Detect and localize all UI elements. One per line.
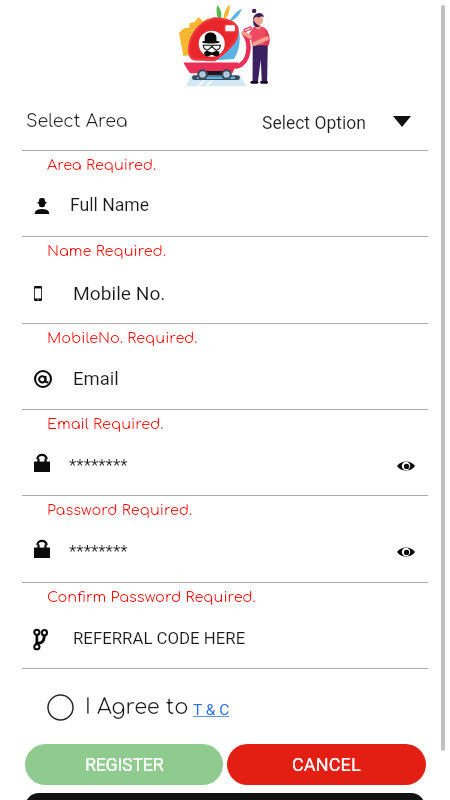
staticText: Email bbox=[73, 368, 119, 390]
staticText: REGISTER bbox=[85, 754, 164, 775]
button[interactable]: T & C bbox=[193, 701, 230, 719]
staticText: Confirm Password Required. bbox=[47, 589, 256, 605]
staticText: CANCEL bbox=[292, 754, 361, 775]
staticText: Area Required. bbox=[47, 157, 157, 173]
button[interactable]: Full Name bbox=[0, 185, 450, 229]
staticText: Full Name bbox=[70, 195, 150, 216]
staticText: MobileNo. Required. bbox=[47, 330, 198, 346]
button[interactable]: ******** bbox=[0, 445, 450, 489]
staticText: Password Required. bbox=[47, 502, 193, 518]
button[interactable]: I Agree to bbox=[0, 688, 450, 728]
button[interactable]: REFERRAL CODE HERE bbox=[0, 618, 450, 662]
staticText: Email Required. bbox=[47, 416, 164, 432]
staticText: Name Required. bbox=[47, 243, 166, 259]
button[interactable]: CANCEL bbox=[227, 744, 426, 785]
button[interactable]: Mobile No. bbox=[0, 272, 450, 316]
staticText: I Agree to bbox=[85, 695, 189, 718]
staticText: ******** bbox=[69, 541, 128, 561]
button[interactable]: REGISTER bbox=[25, 744, 223, 785]
button[interactable]: ******** bbox=[0, 531, 450, 575]
staticText: Select Area bbox=[26, 112, 128, 132]
staticText: REFERRAL CODE HERE bbox=[73, 628, 246, 648]
button[interactable]: Show password bbox=[391, 537, 421, 567]
button[interactable]: Show password bbox=[391, 451, 421, 481]
button[interactable]: Select Area bbox=[0, 104, 450, 150]
staticText: Mobile No. bbox=[73, 282, 166, 305]
staticText: Select Option bbox=[262, 113, 366, 134]
staticText: ******** bbox=[69, 455, 128, 475]
button[interactable]: Email bbox=[0, 358, 450, 402]
